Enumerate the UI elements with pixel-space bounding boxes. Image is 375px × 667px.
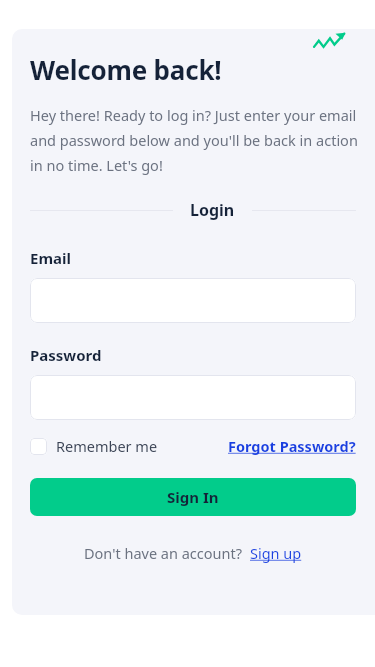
staticText: Sign up: [250, 543, 302, 563]
staticText: Remember me: [56, 436, 158, 456]
staticText: Welcome back!: [30, 52, 222, 87]
other: App logo: [313, 31, 347, 53]
staticText: Hey there! Ready to log in? Just enter y…: [30, 105, 365, 175]
staticText: Forgot Password?: [228, 436, 356, 456]
staticText: Password: [30, 345, 102, 365]
button[interactable]: Sign In: [30, 478, 356, 516]
button[interactable]: Forgot Password?: [228, 436, 356, 456]
staticText: Email: [30, 248, 71, 268]
staticText: Login: [190, 199, 235, 221]
button[interactable]: [30, 375, 356, 420]
button[interactable]: Sign up: [250, 543, 302, 563]
staticText: Sign In: [167, 487, 219, 507]
button[interactable]: [30, 278, 356, 323]
button[interactable]: Remember me: [30, 436, 158, 456]
staticText: Don't have an account?: [84, 543, 242, 563]
